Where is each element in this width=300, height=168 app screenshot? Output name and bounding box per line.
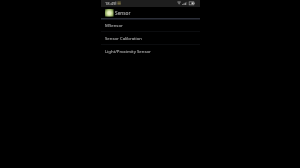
button[interactable]: Sensor bbox=[101, 7, 200, 19]
button[interactable]: Sensor Calibration bbox=[101, 32, 200, 45]
button[interactable]: Light/Proximity Sensor bbox=[101, 45, 200, 58]
staticText: Sensor Calibration bbox=[105, 35, 142, 41]
staticText: Light/Proximity Sensor bbox=[105, 48, 151, 54]
staticText: Sensor bbox=[115, 10, 131, 17]
button[interactable]: MSensor bbox=[101, 19, 200, 32]
staticText: 18:49 bbox=[105, 1, 116, 7]
staticText: MSensor bbox=[105, 22, 123, 28]
